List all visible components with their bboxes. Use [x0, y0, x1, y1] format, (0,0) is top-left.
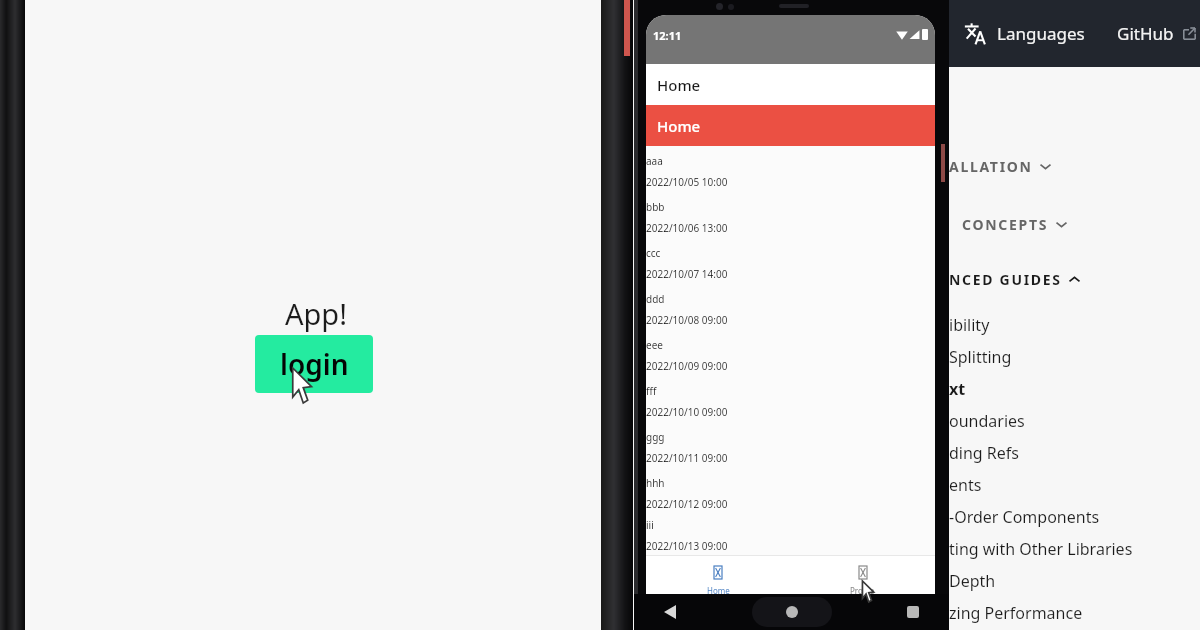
- button[interactable]: NCED GUIDES: [949, 267, 1200, 291]
- staticText: ding Refs: [949, 442, 1020, 464]
- button[interactable]: ddd: [646, 286, 935, 332]
- staticText: eee: [646, 338, 663, 352]
- staticText: iii: [646, 518, 654, 532]
- staticText: 2022/10/11 09:00: [646, 451, 728, 465]
- staticText: 12:11: [653, 28, 682, 43]
- staticText: 2022/10/12 09:00: [646, 497, 728, 511]
- button[interactable]: hhh: [646, 470, 935, 516]
- staticText: NCED GUIDES: [949, 270, 1062, 289]
- staticText: Languages: [997, 22, 1085, 45]
- staticText: 2022/10/08 09:00: [646, 313, 728, 327]
- staticText: -Order Components: [949, 506, 1100, 528]
- staticText: fff: [646, 384, 657, 398]
- staticText: ibility: [949, 314, 990, 336]
- button[interactable]: Languages: [962, 0, 1085, 67]
- staticText: 2022/10/13 09:00: [646, 539, 728, 553]
- staticText: bbb: [646, 200, 665, 214]
- staticText: hhh: [646, 476, 665, 490]
- button[interactable]: login: [255, 335, 373, 393]
- staticText: Home: [657, 116, 701, 136]
- staticText: Home: [707, 585, 730, 594]
- button[interactable]: ding Refs: [949, 437, 1200, 469]
- staticText: Splitting: [949, 346, 1012, 368]
- button[interactable]: Splitting: [949, 341, 1200, 373]
- staticText: 2022/10/06 13:00: [646, 221, 728, 235]
- staticText: ggg: [646, 430, 665, 444]
- staticText: oundaries: [949, 410, 1025, 432]
- staticText: Profile: [850, 585, 875, 594]
- staticText: 2022/10/05 10:00: [646, 175, 728, 189]
- staticText: aaa: [646, 154, 663, 168]
- staticText: GitHub: [1117, 22, 1174, 45]
- button[interactable]: ting with Other Libraries: [949, 533, 1200, 565]
- staticText: 2022/10/10 09:00: [646, 405, 728, 419]
- staticText: App!: [285, 294, 348, 333]
- button[interactable]: ents: [949, 469, 1200, 501]
- button[interactable]: aaa: [646, 148, 935, 194]
- button[interactable]: GitHub (opens in new tab): [1117, 0, 1196, 67]
- button[interactable]: Depth: [949, 565, 1200, 597]
- button[interactable]: -Order Components: [949, 501, 1200, 533]
- button[interactable]: ALLATION: [949, 154, 1200, 178]
- staticText: Depth: [949, 570, 996, 592]
- button[interactable]: ibility: [949, 309, 1200, 341]
- button[interactable]: xt: [949, 373, 1200, 405]
- button[interactable]: iii: [646, 516, 935, 555]
- staticText: ting with Other Libraries: [949, 538, 1133, 560]
- button[interactable]: Home: [646, 556, 790, 594]
- button[interactable]: oundaries: [949, 405, 1200, 437]
- button[interactable]: ccc: [646, 240, 935, 286]
- staticText: ents: [949, 474, 982, 496]
- staticText: ALLATION: [949, 157, 1033, 176]
- staticText: 2022/10/07 14:00: [646, 267, 728, 281]
- button[interactable]: fff: [646, 378, 935, 424]
- staticText: xt: [949, 378, 966, 400]
- staticText: login: [280, 345, 349, 383]
- button[interactable]: Home: [782, 602, 802, 622]
- staticText: ddd: [646, 292, 665, 306]
- staticText: 2022/10/09 09:00: [646, 359, 728, 373]
- button[interactable]: CONCEPTS: [949, 212, 1200, 236]
- staticText: ccc: [646, 246, 661, 260]
- staticText: Home: [657, 75, 701, 95]
- staticText: CONCEPTS: [962, 215, 1049, 234]
- button[interactable]: ggg: [646, 424, 935, 470]
- button[interactable]: Back: [660, 602, 680, 622]
- button[interactable]: eee: [646, 332, 935, 378]
- staticText: zing Performance: [949, 602, 1083, 624]
- button[interactable]: Profile: [790, 556, 935, 594]
- button[interactable]: bbb: [646, 194, 935, 240]
- button[interactable]: Recents: [903, 602, 923, 622]
- button[interactable]: zing Performance: [949, 597, 1200, 629]
